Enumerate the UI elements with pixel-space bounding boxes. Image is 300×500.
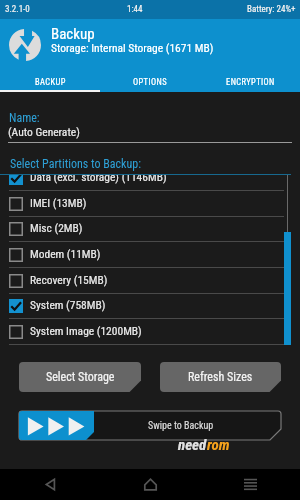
- button[interactable]: Data (excl. storage) (1146MB): [0, 174, 300, 191]
- staticText: Swipe to Backup: [148, 420, 214, 432]
- button[interactable]: OPTIONS: [100, 72, 200, 92]
- button[interactable]: Select Storage: [19, 362, 141, 392]
- staticText: rom: [207, 436, 230, 454]
- staticText: (Auto Generate): [8, 125, 80, 138]
- button[interactable]: System Image (1200MB): [0, 319, 300, 345]
- staticText: need: [178, 436, 207, 454]
- staticText: Select Partitions to Backup:: [10, 157, 142, 171]
- button[interactable]: Home: [100, 469, 200, 500]
- staticText: Data (excl. storage) (1146MB): [30, 174, 167, 183]
- staticText: Select Storage: [46, 370, 115, 384]
- button[interactable]: System (758MB): [0, 293, 300, 319]
- staticText: Misc (2MB): [30, 221, 83, 234]
- staticText: Refresh Sizes: [188, 370, 253, 384]
- staticText: BACKUP: [35, 77, 66, 87]
- staticText: Name:: [9, 111, 40, 125]
- staticText: 1:44: [127, 4, 143, 15]
- staticText: OPTIONS: [133, 77, 167, 87]
- button[interactable]: Swipe to Backup: [19, 411, 281, 440]
- button[interactable]: Recovery (15MB): [0, 268, 300, 294]
- staticText: Battery: 24%+: [247, 4, 296, 15]
- staticText: ENCRYPTION: [226, 77, 275, 87]
- button[interactable]: Back: [0, 469, 100, 500]
- staticText: System Image (1200MB): [30, 324, 142, 337]
- staticText: Modem (11MB): [30, 247, 101, 260]
- button[interactable]: Menu: [200, 469, 300, 500]
- staticText: Recovery (15MB): [30, 273, 108, 286]
- button[interactable]: Modem (11MB): [0, 242, 300, 268]
- staticText: Backup: [51, 25, 95, 43]
- staticText: Storage: Internal Storage (1671 MB): [51, 41, 214, 54]
- staticText: System (758MB): [30, 298, 106, 311]
- button[interactable]: IMEI (13MB): [0, 191, 300, 217]
- staticText: 3.2.1-0: [5, 4, 30, 15]
- button[interactable]: Misc (2MB): [0, 216, 300, 242]
- staticText: IMEI (13MB): [30, 196, 87, 209]
- button[interactable]: BACKUP: [0, 72, 100, 92]
- button[interactable]: Refresh Sizes: [160, 362, 281, 392]
- button[interactable]: ENCRYPTION: [200, 72, 300, 92]
